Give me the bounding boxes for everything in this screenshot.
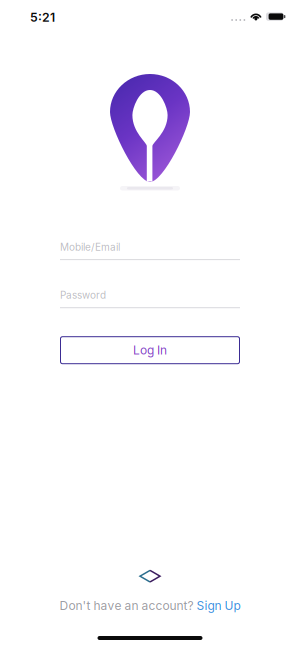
staticText: 5:21 <box>30 10 55 25</box>
button[interactable]: Log In <box>60 336 240 364</box>
staticText: Log In <box>133 343 167 357</box>
staticText: Password <box>60 289 106 301</box>
staticText: Don't have an account? <box>59 598 193 613</box>
staticText: Sign Up <box>196 598 240 613</box>
button[interactable]: Sign Up <box>196 598 240 613</box>
staticText: Mobile/Email <box>60 241 120 253</box>
